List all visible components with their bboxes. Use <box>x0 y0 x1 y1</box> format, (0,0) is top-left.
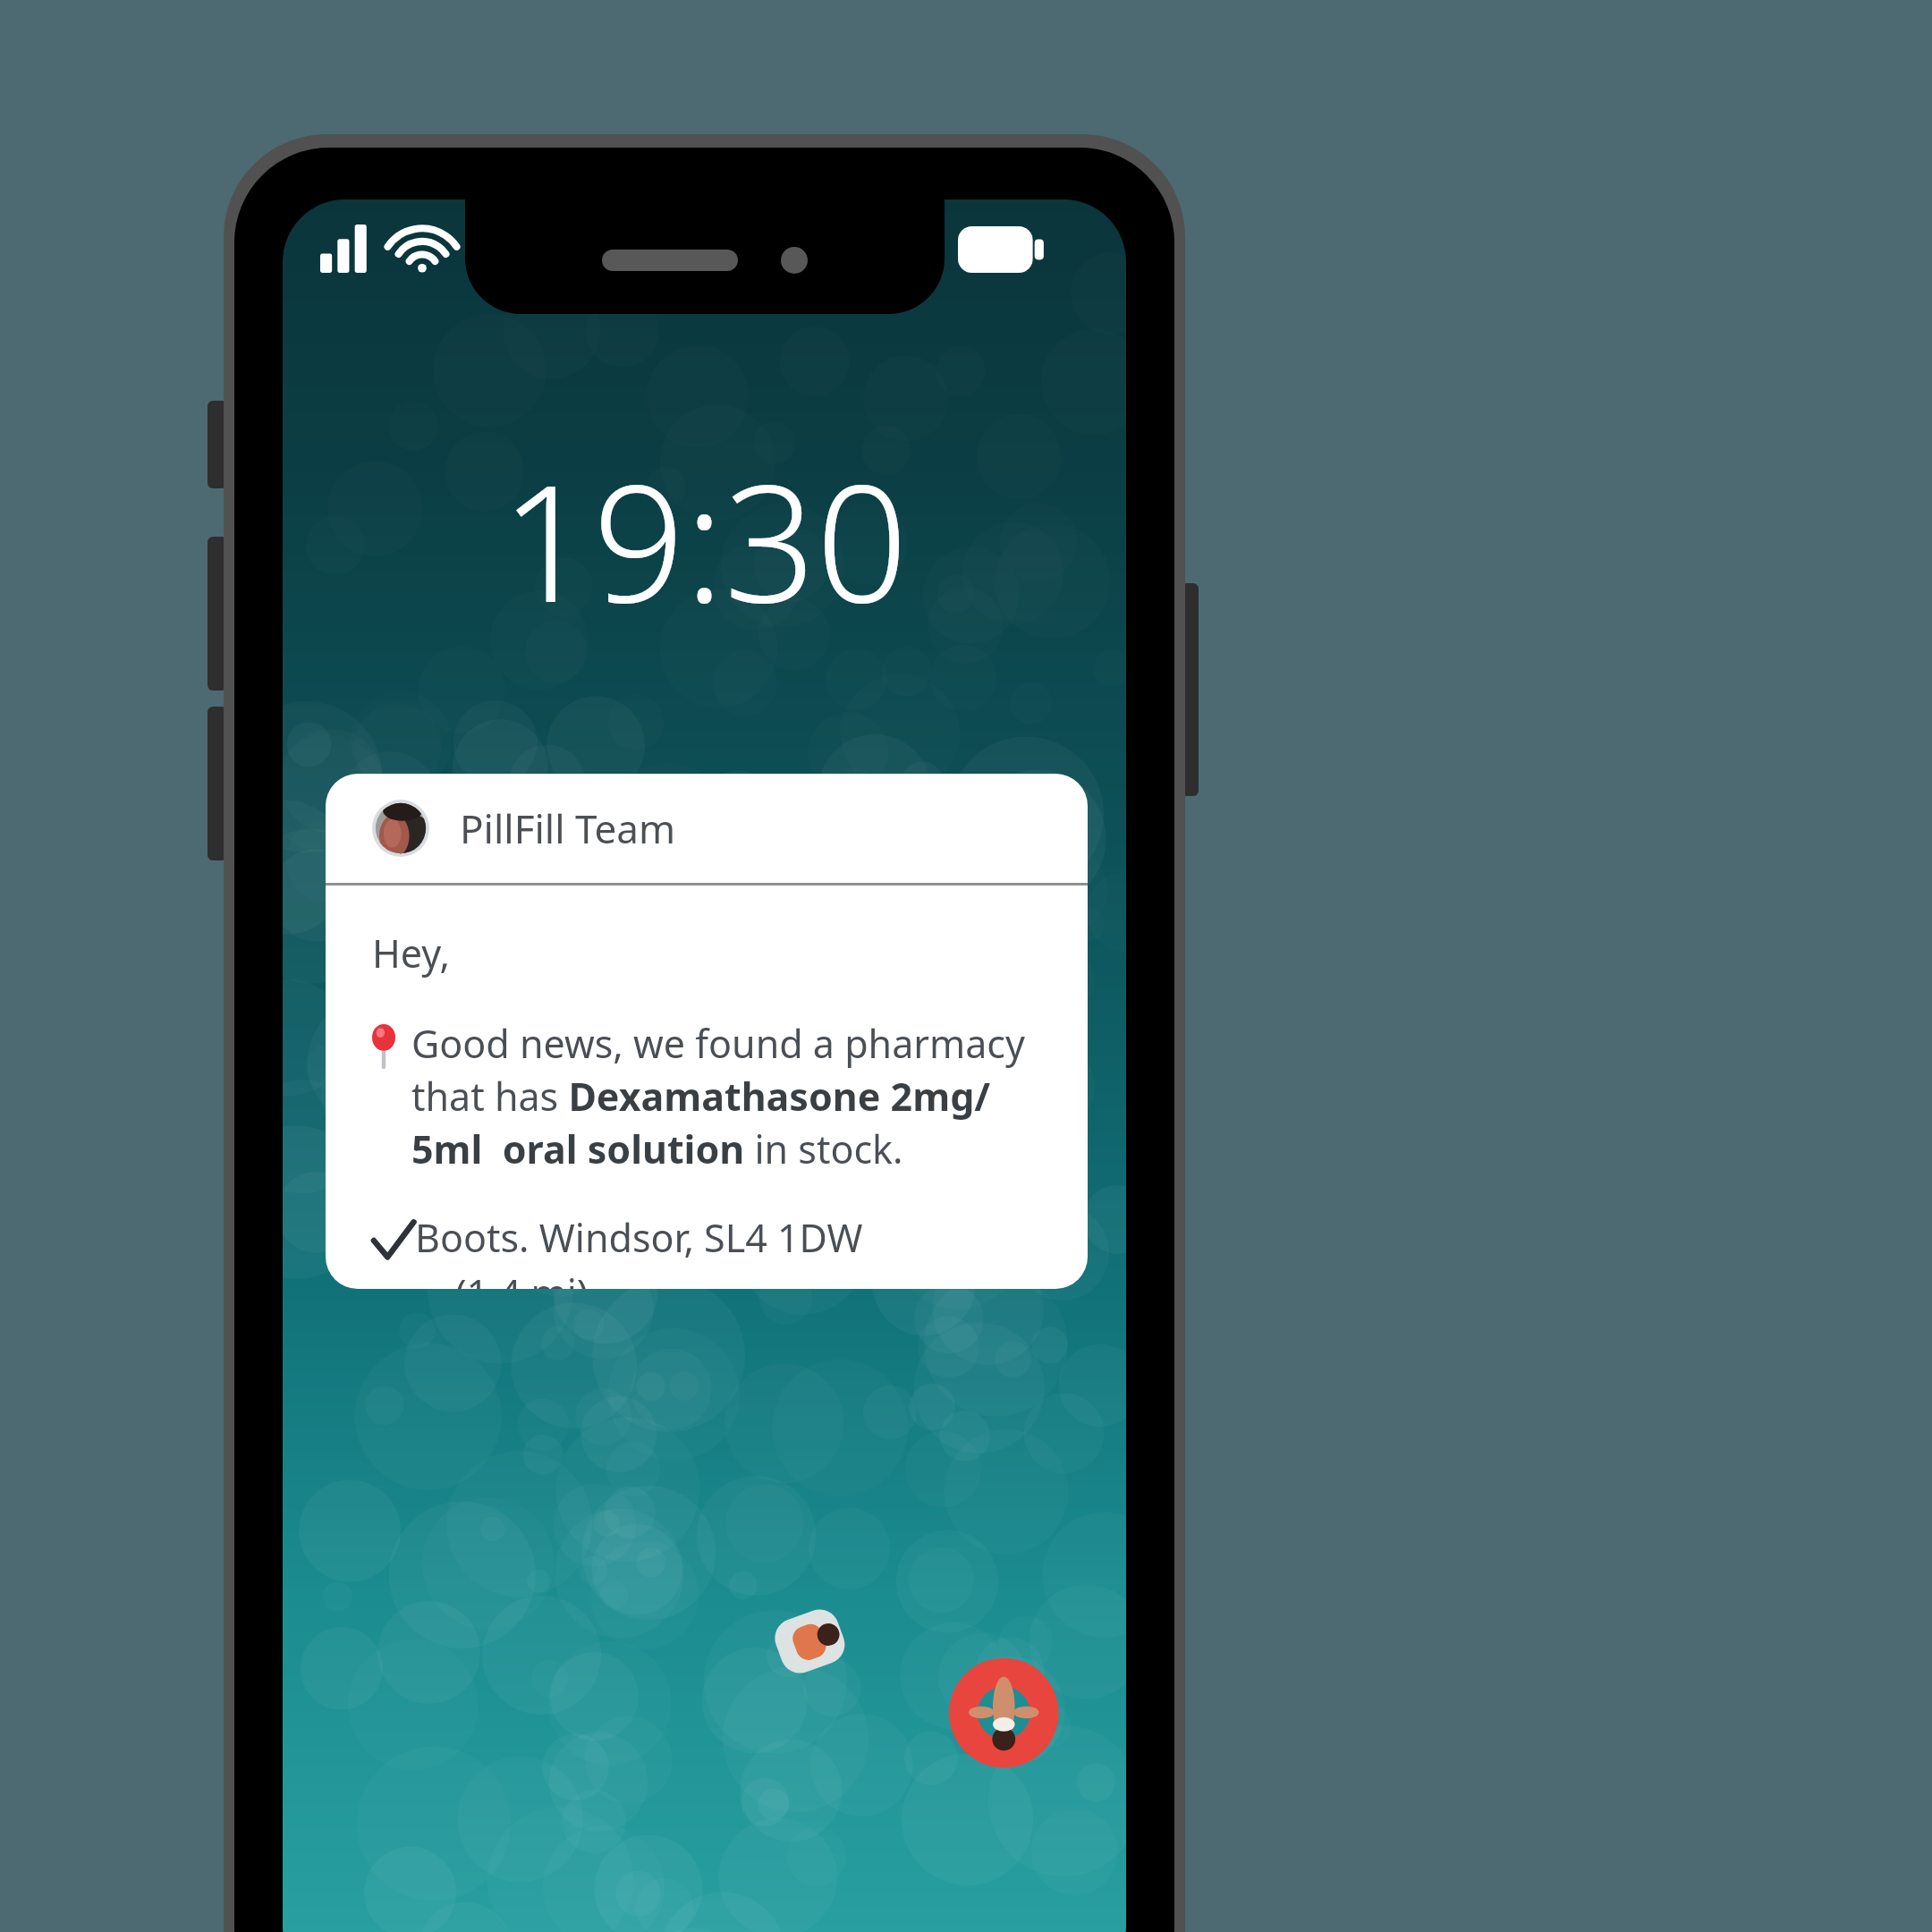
button[interactable]: PillFill Team <box>326 774 1088 1289</box>
other: Wi-Fi <box>394 225 451 273</box>
staticText: Hey, <box>372 927 450 979</box>
other: Battery <box>958 226 1049 273</box>
staticText: Boots. Windsor, SL4 1DW (1.4 mi) <box>415 1211 863 1289</box>
staticText: 19:30 <box>501 430 909 649</box>
staticText: PillFill Team <box>460 801 676 855</box>
staticText: Good news, we found a pharmacy that has … <box>411 1017 1061 1175</box>
other: Cellular signal <box>320 225 370 273</box>
